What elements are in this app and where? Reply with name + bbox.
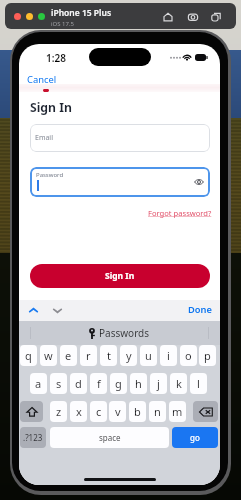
button[interactable]: c <box>90 401 107 422</box>
button[interactable]: Home <box>161 10 174 23</box>
button[interactable]: s <box>50 373 67 394</box>
button[interactable]: Done <box>180 300 220 319</box>
button[interactable]: Cancel <box>23 70 61 89</box>
button[interactable]: l <box>190 373 207 394</box>
staticText: t <box>107 348 111 363</box>
button[interactable]: space <box>50 427 169 448</box>
staticText: Done <box>188 303 212 316</box>
staticText: v <box>115 404 121 419</box>
staticText: n <box>154 404 161 419</box>
staticText: Sign In <box>105 270 135 282</box>
staticText: w <box>44 348 53 363</box>
button[interactable]: m <box>169 401 186 422</box>
staticText: Password <box>36 171 64 179</box>
staticText: iPhone 15 Plus <box>51 7 112 19</box>
button[interactable]: y <box>120 345 137 366</box>
staticText: r <box>86 348 91 363</box>
staticText: q <box>25 348 32 363</box>
staticText: z <box>56 404 62 419</box>
button[interactable]: Record screen <box>209 10 222 23</box>
button[interactable]: go <box>172 427 218 448</box>
button[interactable]: Sign In <box>30 264 210 288</box>
button[interactable]: Shift <box>20 401 43 422</box>
button[interactable]: f <box>90 373 107 394</box>
button[interactable]: x <box>70 401 87 422</box>
button[interactable]: Previous field <box>24 301 42 319</box>
staticText: s <box>56 376 62 391</box>
staticText: m <box>172 404 183 419</box>
button[interactable]: a <box>30 373 47 394</box>
button[interactable]: k <box>170 373 187 394</box>
button[interactable]: z <box>50 401 67 422</box>
staticText: iOS 17.5 <box>51 20 74 28</box>
staticText: go <box>190 432 200 443</box>
button[interactable]: Email <box>30 124 210 152</box>
staticText: Sign In <box>30 99 72 116</box>
staticText: Passwords <box>99 326 150 340</box>
staticText: d <box>75 376 82 391</box>
button[interactable]: Passwords <box>83 324 156 342</box>
staticText: u <box>145 348 152 363</box>
button[interactable]: n <box>149 401 166 422</box>
staticText: space <box>99 432 121 443</box>
button[interactable]: i <box>160 345 177 366</box>
staticText: c <box>96 404 102 419</box>
button[interactable]: Next field <box>48 301 66 319</box>
staticText: l <box>197 376 200 391</box>
button[interactable]: d <box>70 373 87 394</box>
staticText: Forgot password? <box>148 208 212 218</box>
button[interactable]: w <box>40 345 57 366</box>
button[interactable]: .?123 <box>20 427 46 448</box>
staticText: k <box>176 376 182 391</box>
button[interactable]: Password <box>30 167 210 197</box>
button[interactable]: v <box>109 401 126 422</box>
button[interactable]: o <box>180 345 197 366</box>
button[interactable]: g <box>110 373 127 394</box>
button[interactable]: Forgot password? <box>146 206 214 220</box>
button[interactable]: Show password <box>193 176 205 188</box>
staticText: Cancel <box>27 73 57 86</box>
staticText: f <box>97 376 101 391</box>
staticText: i <box>167 348 170 363</box>
staticText: j <box>157 376 160 391</box>
button[interactable]: p <box>199 345 216 366</box>
staticText: p <box>204 348 211 363</box>
staticText: h <box>135 376 142 391</box>
staticText: b <box>134 404 141 419</box>
button[interactable]: t <box>100 345 117 366</box>
staticText: a <box>35 376 42 391</box>
button[interactable]: u <box>140 345 157 366</box>
button[interactable]: b <box>129 401 146 422</box>
button[interactable]: r <box>80 345 97 366</box>
staticText: o <box>185 348 192 363</box>
staticText: e <box>65 348 72 363</box>
staticText: 1:28 <box>46 51 66 65</box>
button[interactable]: Screenshot <box>186 10 199 23</box>
button[interactable]: e <box>60 345 77 366</box>
staticText: x <box>76 404 82 419</box>
staticText: .?123 <box>23 432 43 443</box>
staticText: g <box>115 376 122 391</box>
button[interactable]: j <box>150 373 167 394</box>
staticText: Email <box>35 133 53 143</box>
staticText: y <box>126 348 132 363</box>
button[interactable]: Delete <box>193 401 218 422</box>
button[interactable]: h <box>130 373 147 394</box>
button[interactable]: q <box>20 345 37 366</box>
